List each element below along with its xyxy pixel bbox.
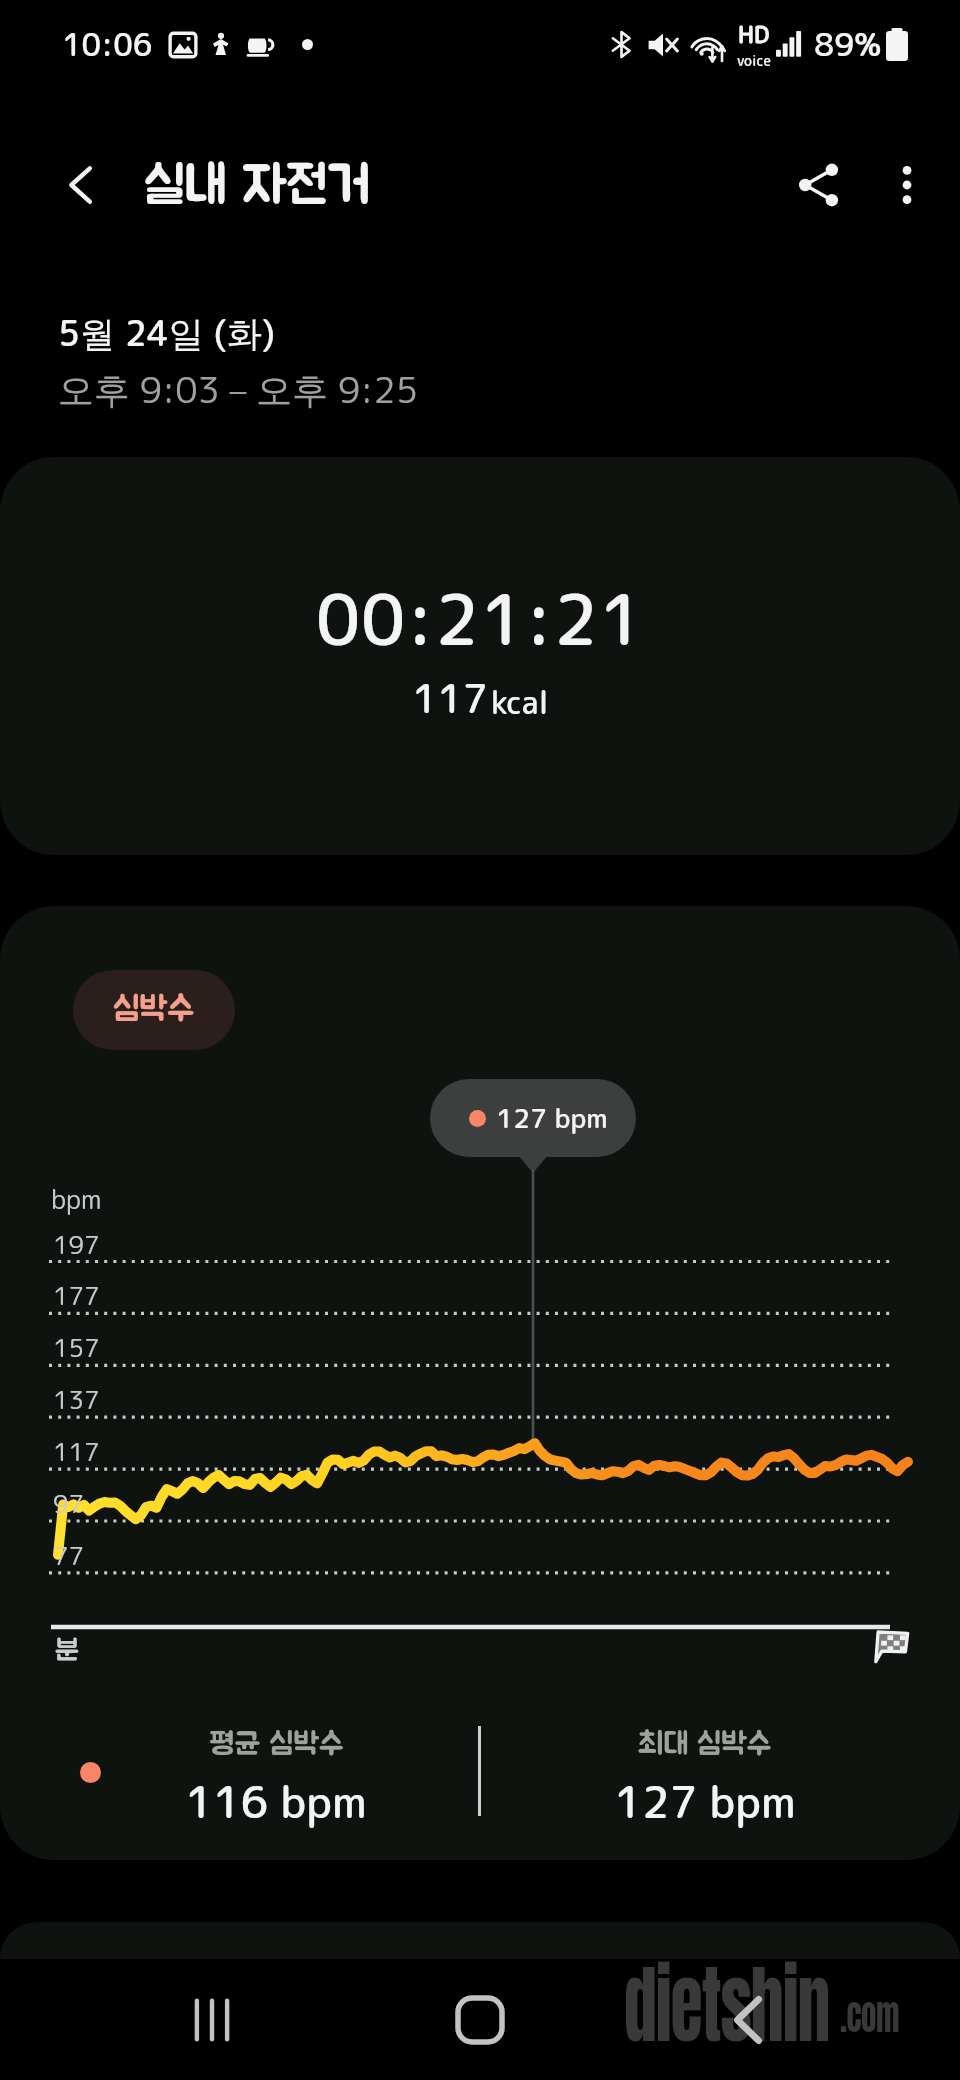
staticText: 실내 자전거 [145,160,371,212]
staticText: 평균 심박수 [209,1729,344,1760]
staticText: 77 [53,1538,85,1573]
staticText: 10:06 [62,23,153,66]
staticText: 5월 24일 (화) [58,308,276,357]
staticText: 117 [412,670,488,726]
staticText: 심박수 [113,993,195,1027]
staticText: .com [840,1985,899,2046]
staticText: dietshin [624,1940,830,2069]
staticText: 177 [53,1278,100,1313]
button[interactable]: 00:21:21 [0,457,960,855]
staticText: 127 bpm [496,1099,608,1137]
staticText: 116 bpm [185,1771,367,1832]
button[interactable]: More options [864,142,950,228]
staticText: HD [738,18,770,50]
staticText: 오후 9:03 – 오후 9:25 [58,364,419,414]
staticText: 117 [53,1434,100,1469]
staticText: voice [737,51,771,71]
button[interactable]: Home [438,1978,522,2062]
staticText: 분 [55,1637,79,1666]
button[interactable]: Back [38,142,124,228]
staticText: 137 [53,1382,100,1417]
staticText: 89% [814,22,882,67]
staticText: kcal [491,681,549,724]
button[interactable]: Back [706,1978,790,2062]
staticText: 157 [53,1330,100,1365]
staticText: 최대 심박수 [638,1729,772,1760]
button[interactable]: 심박수 [73,970,235,1050]
staticText: 97 [53,1486,85,1521]
staticText: 127 bpm [614,1771,796,1832]
button[interactable]: Share [774,140,864,230]
button[interactable]: Recent apps [170,1978,254,2062]
staticText: bpm [51,1181,102,1217]
staticText: 197 [53,1227,100,1262]
staticText: 00:21:21 [316,570,644,668]
